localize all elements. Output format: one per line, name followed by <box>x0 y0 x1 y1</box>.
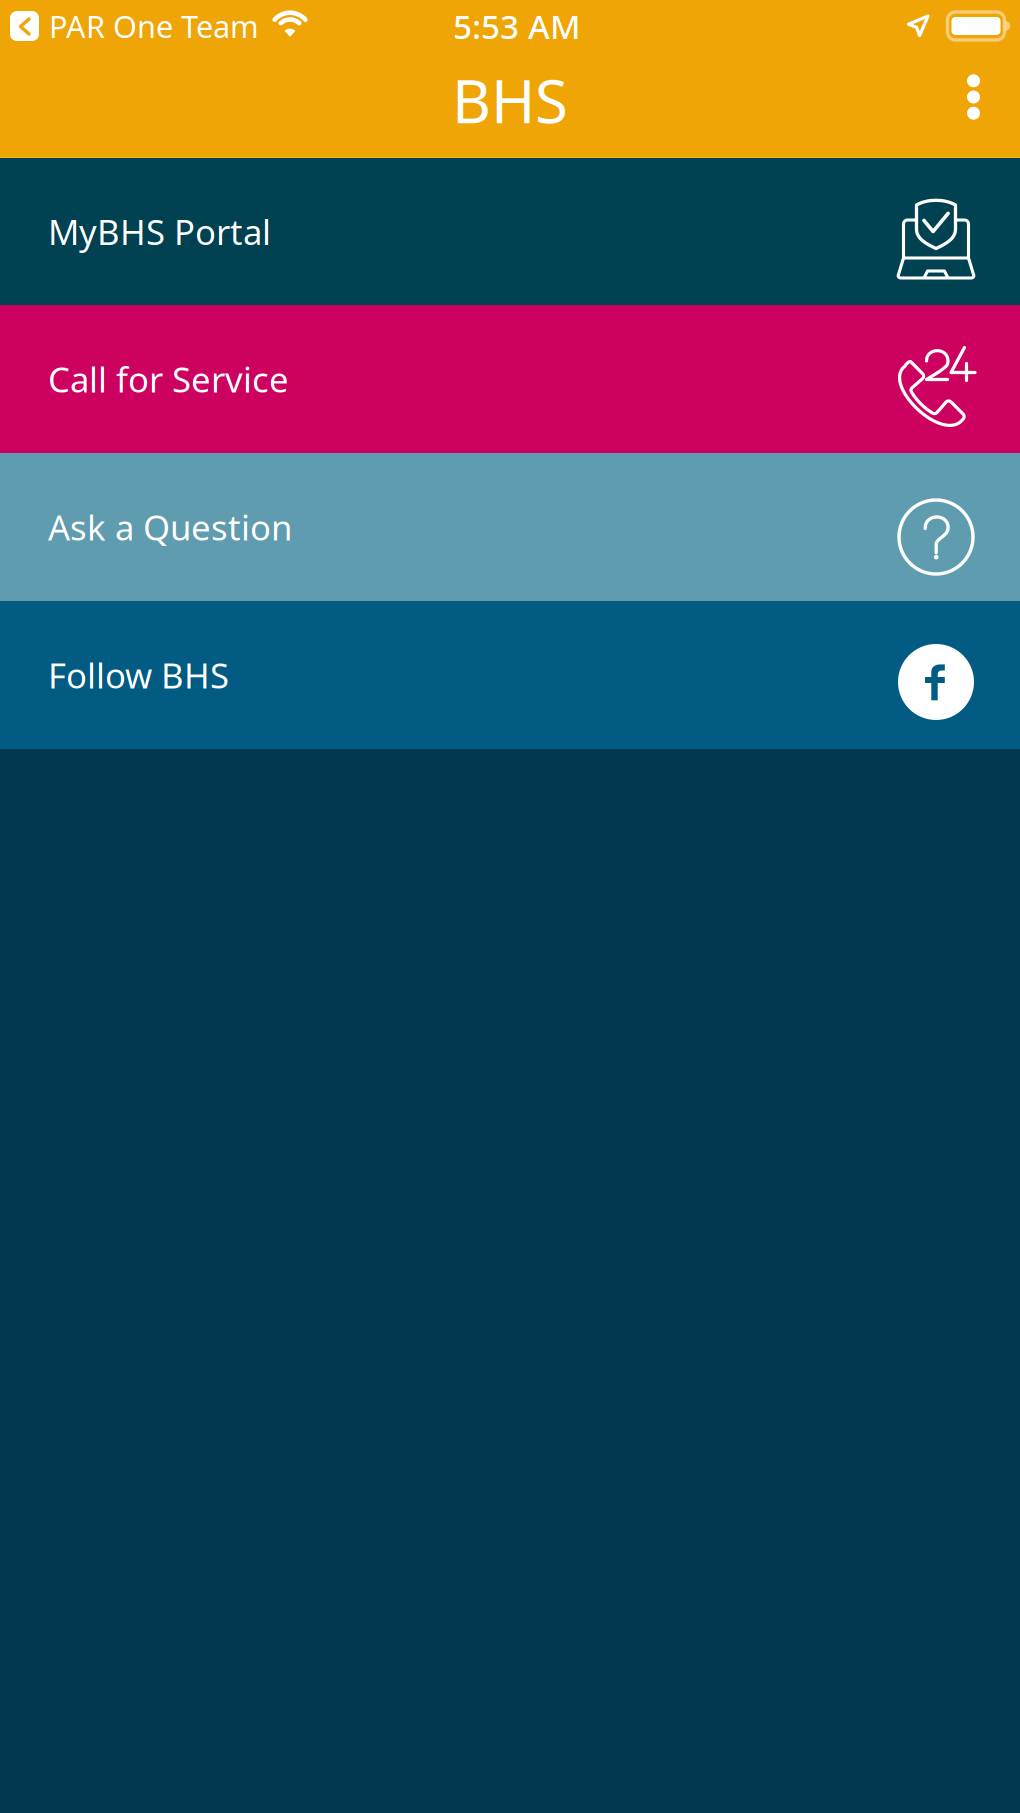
button[interactable]: Call for Service <box>0 305 1020 453</box>
button[interactable]: Ask a Question <box>0 453 1020 601</box>
staticText: Follow BHS <box>48 652 229 698</box>
staticText: PAR One Team <box>49 6 259 46</box>
button[interactable]: MyBHS Portal <box>0 158 1020 305</box>
staticText: Call for Service <box>48 356 289 402</box>
staticText: MyBHS Portal <box>48 208 271 254</box>
staticText: 5:53 AM <box>453 4 581 48</box>
staticText: Ask a Question <box>48 504 292 550</box>
button[interactable]: More options <box>927 53 1020 157</box>
button[interactable]: Follow BHS <box>0 601 1020 749</box>
button[interactable]: Back to PAR One Team <box>0 0 261 53</box>
staticText: BHS <box>452 60 568 140</box>
